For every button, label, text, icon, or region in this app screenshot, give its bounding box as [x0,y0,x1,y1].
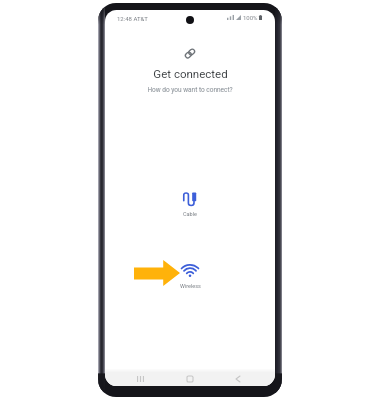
button[interactable]: Recent apps [131,370,149,386]
button[interactable]: Back [229,370,247,386]
staticText: 12:48 AT&T [117,15,148,22]
staticText: How do you want to connect? [147,86,233,94]
button[interactable]: Home [181,370,199,386]
staticText: Cable [183,211,197,217]
button[interactable]: Cable [172,192,208,217]
staticText: Wireless [180,283,201,289]
staticText: 100% [243,14,258,21]
staticText: Get connected [153,67,228,80]
button[interactable]: Wireless [172,264,208,289]
